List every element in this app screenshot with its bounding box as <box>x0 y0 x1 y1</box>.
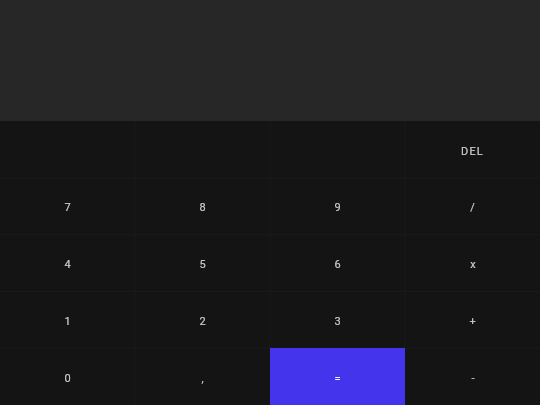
button[interactable]: Delete <box>405 121 540 177</box>
staticText: , <box>201 372 204 385</box>
button[interactable]: 8 <box>135 177 270 234</box>
button[interactable]: Subtract <box>405 348 540 405</box>
staticText: 4 <box>64 258 71 271</box>
staticText: x <box>470 258 476 271</box>
staticText: + <box>469 315 476 328</box>
staticText: 5 <box>199 258 206 271</box>
staticText: 7 <box>64 201 71 214</box>
button[interactable]: Decimal separator <box>135 348 270 405</box>
button[interactable]: 3 <box>270 291 405 348</box>
staticText: - <box>471 372 475 385</box>
staticText: 0 <box>64 372 71 385</box>
staticText: 3 <box>334 315 341 328</box>
staticText: / <box>470 201 475 214</box>
button[interactable]: Equals <box>270 348 405 405</box>
button[interactable]: Multiply <box>405 234 540 291</box>
button[interactable]: 5 <box>135 234 270 291</box>
staticText: 8 <box>199 201 206 214</box>
button[interactable]: 9 <box>270 177 405 234</box>
staticText: 6 <box>334 258 341 271</box>
button[interactable]: Add <box>405 291 540 348</box>
button[interactable]: 6 <box>270 234 405 291</box>
button[interactable]: 2 <box>135 291 270 348</box>
staticText: = <box>334 372 341 385</box>
button[interactable]: 7 <box>0 177 135 234</box>
staticText: 9 <box>334 201 341 214</box>
button[interactable]: Divide <box>405 177 540 234</box>
staticText: 1 <box>64 315 71 328</box>
staticText: DEL <box>461 145 484 158</box>
button[interactable]: 4 <box>0 234 135 291</box>
staticText: 2 <box>199 315 206 328</box>
button[interactable]: 0 <box>0 348 135 405</box>
button[interactable]: 1 <box>0 291 135 348</box>
